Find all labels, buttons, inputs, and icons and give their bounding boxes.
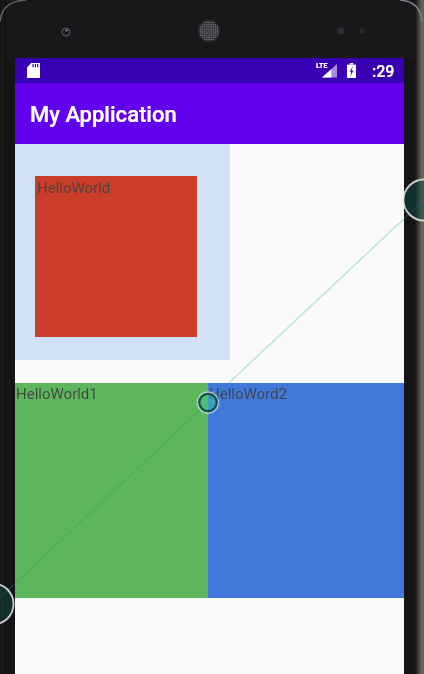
button[interactable]: HelloWorld1	[15, 383, 208, 598]
staticText: LTE	[316, 62, 328, 70]
button[interactable]: HelloWord2	[208, 383, 404, 598]
other: SD card	[27, 63, 40, 78]
button[interactable]: HelloWorld	[35, 176, 197, 337]
staticText: My Application	[30, 102, 177, 128]
button[interactable]: My Application	[15, 83, 404, 144]
staticText: HelloWorld1	[16, 385, 98, 403]
staticText: HelloWord2	[209, 385, 287, 403]
staticText: :29	[372, 62, 395, 81]
staticText: HelloWorld	[37, 179, 111, 197]
